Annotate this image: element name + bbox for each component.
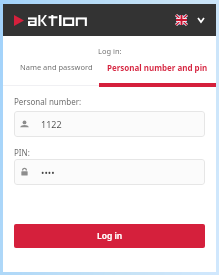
button[interactable]: Select language [176, 15, 204, 25]
button[interactable]: Name and password [3, 62, 109, 83]
staticText: Log in: [98, 46, 122, 56]
staticText: Personal number: [14, 96, 82, 107]
button[interactable]: 1122 [14, 111, 205, 137]
staticText: •••• [41, 166, 55, 178]
staticText: Personal number and pin [107, 62, 208, 73]
button[interactable]: Log in [14, 224, 205, 248]
staticText: 1122 [41, 118, 62, 130]
button[interactable]: •••• [14, 159, 205, 185]
staticText: Name and password [20, 62, 93, 72]
staticText: Log in [97, 230, 123, 242]
button[interactable]: Aktion home [14, 15, 89, 26]
button[interactable]: Personal number and pin [109, 62, 216, 83]
staticText: PIN: [14, 147, 30, 158]
